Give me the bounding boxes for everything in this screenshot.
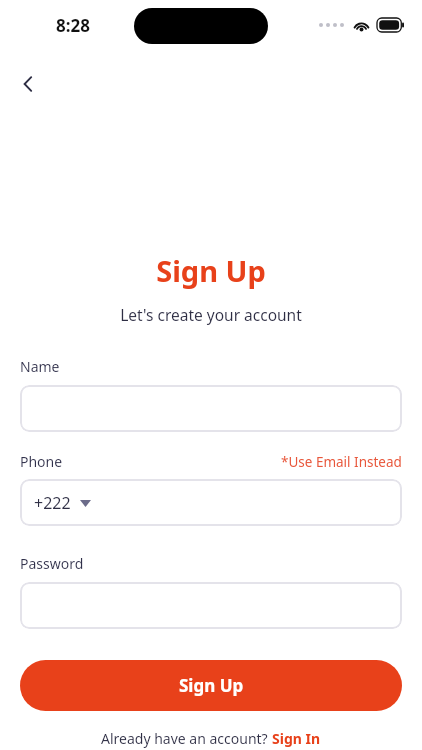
staticText: Sign In xyxy=(272,729,321,748)
staticText: Sign Up xyxy=(179,674,244,697)
button[interactable]: Already have an account? xyxy=(0,729,422,748)
staticText: Already have an account? xyxy=(101,729,272,748)
staticText: 8:28 xyxy=(56,14,90,37)
button[interactable] xyxy=(20,582,402,629)
button[interactable]: +222 xyxy=(20,479,402,526)
staticText: Name xyxy=(20,357,402,376)
button[interactable]: Sign Up xyxy=(20,660,402,711)
button[interactable]: Back xyxy=(8,64,48,104)
staticText: Phone xyxy=(20,452,63,471)
button[interactable]: *Use Email Instead xyxy=(281,453,402,471)
staticText: +222 xyxy=(34,492,71,514)
button[interactable] xyxy=(20,385,402,432)
staticText: *Use Email Instead xyxy=(281,453,402,471)
staticText: Password xyxy=(20,554,402,573)
staticText: Let's create your account xyxy=(0,304,422,325)
staticText: Sign Up xyxy=(0,251,422,290)
